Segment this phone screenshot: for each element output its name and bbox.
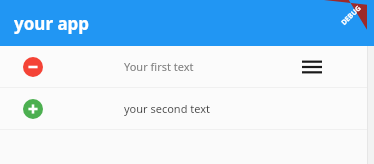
staticText: your second text bbox=[124, 101, 211, 116]
staticText: your app bbox=[14, 12, 90, 35]
button[interactable]: Add item bbox=[0, 88, 374, 129]
staticText: Your first text bbox=[124, 59, 194, 74]
button[interactable]: Remove item bbox=[0, 46, 374, 87]
button[interactable]: Reorder bbox=[302, 60, 322, 74]
button[interactable]: Remove item bbox=[23, 57, 43, 77]
button[interactable]: Add item bbox=[23, 99, 43, 119]
